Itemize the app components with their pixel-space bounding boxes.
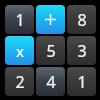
button[interactable]: 1	[5, 5, 34, 34]
staticText: 2	[15, 71, 25, 93]
button[interactable]: Plus	[36, 5, 65, 34]
staticText: 3	[77, 40, 87, 62]
button[interactable]: 3	[67, 36, 96, 65]
staticText: 4	[46, 71, 56, 93]
button[interactable]: 5	[36, 36, 65, 65]
staticText: x	[16, 41, 24, 61]
button[interactable]: 2	[5, 67, 34, 96]
button[interactable]: Multiply	[5, 36, 34, 65]
staticText: 8	[77, 9, 87, 31]
staticText: 1	[15, 9, 25, 31]
button[interactable]: 4	[36, 67, 65, 96]
button[interactable]: 1	[67, 67, 96, 96]
staticText: 1	[77, 71, 87, 93]
staticText: 5	[46, 40, 56, 62]
button[interactable]: 8	[67, 5, 96, 34]
